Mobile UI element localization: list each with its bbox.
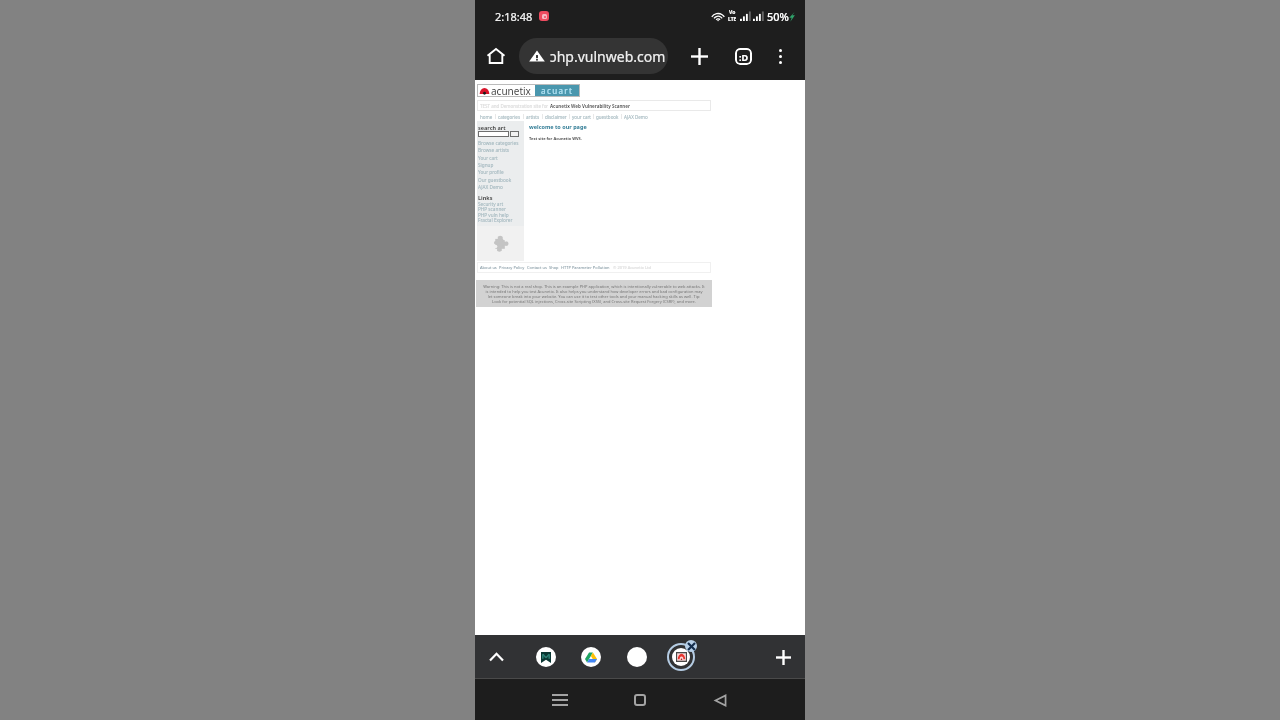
staticText: artists	[526, 114, 540, 120]
button[interactable]: PHP scanner	[478, 206, 522, 212]
button[interactable]: your cart	[570, 112, 593, 121]
button[interactable]: Home	[623, 683, 657, 717]
button[interactable]: Current tab	[665, 641, 697, 673]
staticText: Warning: This is not a real shop. This i…	[483, 284, 705, 304]
staticText: ɔhp.vulnweb.com	[550, 47, 666, 66]
staticText: About us	[480, 265, 497, 270]
staticText: acuart	[541, 85, 574, 96]
button[interactable]: Medium	[536, 647, 556, 667]
button[interactable]: Our guestbook	[478, 176, 522, 183]
staticText: Privacy Policy	[499, 265, 525, 270]
staticText: PHP vuln help	[478, 212, 509, 218]
staticText: categories	[498, 114, 521, 120]
button[interactable]: Your profile	[478, 168, 522, 175]
button[interactable]: Signup	[478, 161, 522, 168]
staticText: Signup	[478, 162, 494, 168]
staticText: Fractal Explorer	[478, 217, 513, 223]
staticText: Our guestbook	[478, 177, 512, 183]
staticText: TEST and Demonstration site for	[480, 103, 550, 109]
button[interactable]: New tab	[682, 39, 716, 73]
staticText: Security art	[478, 201, 504, 207]
staticText: Acunetix Web Vulnerability Scanner	[550, 103, 630, 109]
button[interactable]: New tab	[768, 642, 798, 672]
button[interactable]: Back	[703, 683, 737, 717]
staticText: :D	[739, 51, 749, 63]
button[interactable]: Blank tab	[627, 647, 647, 667]
button[interactable]: Recents	[543, 683, 577, 717]
staticText: © 2019 Acunetix Ltd	[611, 265, 651, 270]
staticText: 50%	[767, 9, 789, 24]
button[interactable]: Privacy Policy	[498, 265, 526, 270]
staticText: AJAX Demo	[478, 184, 503, 190]
button[interactable]: Browse categories	[478, 139, 522, 146]
staticText: search art	[478, 124, 506, 131]
button[interactable]: Shop	[548, 265, 560, 270]
staticText: Your profile	[478, 169, 504, 175]
button[interactable]: Tabs	[726, 39, 760, 73]
button[interactable]: Your cart	[478, 154, 522, 161]
button[interactable]: Search field	[478, 131, 509, 137]
button[interactable]: Contact us	[526, 265, 548, 270]
button[interactable]: Google Drive	[581, 647, 601, 667]
staticText: welcome to our page	[529, 123, 587, 130]
button[interactable]: AJAX Demo	[622, 112, 650, 121]
staticText: home	[480, 114, 493, 120]
staticText: Browse artists	[478, 147, 510, 153]
staticText: HTTP Parameter Pollution	[561, 265, 610, 270]
button[interactable]: PHP vuln help	[478, 212, 522, 218]
button[interactable]: categories	[496, 112, 523, 121]
staticText: disclaimer	[545, 114, 567, 120]
button[interactable]: More options	[763, 39, 797, 73]
button[interactable]: Go	[510, 131, 519, 137]
staticText: Test site for Acunetix WVS.	[529, 136, 582, 141]
staticText: Browse categories	[478, 140, 519, 146]
button[interactable]: Fractal Explorer	[478, 217, 522, 223]
staticText: guestbook	[596, 114, 619, 120]
staticText: your cart	[572, 114, 591, 120]
button[interactable]: disclaimer	[543, 112, 569, 121]
button[interactable]: Expand toolbar	[481, 642, 511, 672]
button[interactable]: AJAX Demo	[478, 183, 522, 190]
staticText: LTE	[728, 16, 737, 23]
button[interactable]: Home	[478, 38, 514, 74]
staticText: Vo	[729, 9, 736, 16]
staticText: 2:18:48	[495, 9, 533, 24]
button[interactable]: Security art	[478, 201, 522, 207]
staticText: AJAX Demo	[624, 114, 648, 120]
button[interactable]: Close tab	[685, 640, 697, 652]
staticText: Your cart	[478, 155, 498, 161]
button[interactable]: HTTP Parameter Pollution	[560, 265, 611, 270]
button[interactable]: Browse artists	[478, 146, 522, 153]
staticText: Contact us	[527, 265, 547, 270]
staticText: acunetix	[491, 84, 531, 97]
button[interactable]: artists	[524, 112, 542, 121]
button[interactable]: ɔhp.vulnweb.com	[519, 38, 668, 74]
staticText: PHP scanner	[478, 206, 506, 212]
button[interactable]: guestbook	[594, 112, 621, 121]
button[interactable]: home	[478, 112, 495, 121]
staticText: Links	[478, 194, 493, 201]
staticText: Shop	[549, 265, 559, 270]
button[interactable]: About us	[479, 265, 498, 270]
